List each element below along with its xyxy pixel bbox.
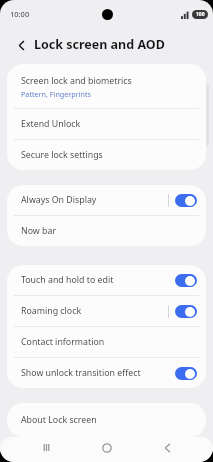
button[interactable]: Show unlock transition effect bbox=[7, 358, 206, 388]
button[interactable]: About Lock screen bbox=[7, 403, 206, 437]
button[interactable]: Home bbox=[92, 437, 122, 458]
button[interactable]: Back bbox=[152, 437, 182, 458]
staticText: Extend Unlock bbox=[21, 118, 81, 130]
staticText: About Lock screen bbox=[21, 414, 97, 426]
button[interactable]: Touch and hold to edit bbox=[7, 265, 206, 295]
button[interactable]: Toggle on bbox=[175, 305, 197, 318]
button[interactable]: Always On Display bbox=[7, 185, 206, 215]
staticText: Always On Display bbox=[21, 194, 97, 206]
staticText: 10:00 bbox=[10, 9, 30, 19]
staticText: Lock screen and AOD bbox=[34, 36, 165, 53]
staticText: Contact information bbox=[21, 336, 105, 348]
staticText: Screen lock and biometrics bbox=[21, 75, 132, 87]
staticText: Secure lock settings bbox=[21, 149, 103, 161]
staticText: Roaming clock bbox=[21, 305, 82, 317]
button[interactable]: Back bbox=[12, 36, 30, 54]
staticText: Show unlock transition effect bbox=[21, 367, 141, 379]
button[interactable]: Roaming clock bbox=[7, 296, 206, 326]
button[interactable]: Toggle on bbox=[175, 274, 197, 287]
button[interactable]: Toggle on bbox=[175, 367, 197, 380]
staticText: Touch and hold to edit bbox=[21, 274, 114, 286]
staticText: 100 bbox=[196, 11, 205, 18]
staticText: Pattern, Fingerprints bbox=[21, 89, 92, 99]
staticText: Now bar bbox=[21, 225, 57, 237]
button[interactable]: Contact information bbox=[7, 327, 206, 357]
button[interactable]: Extend Unlock bbox=[7, 109, 206, 139]
button[interactable]: Toggle on bbox=[175, 194, 197, 207]
button[interactable]: Secure lock settings bbox=[7, 140, 206, 170]
button[interactable]: Now bar bbox=[7, 216, 206, 246]
button[interactable]: Recents bbox=[31, 437, 61, 458]
button[interactable]: Screen lock and biometrics bbox=[7, 64, 206, 108]
